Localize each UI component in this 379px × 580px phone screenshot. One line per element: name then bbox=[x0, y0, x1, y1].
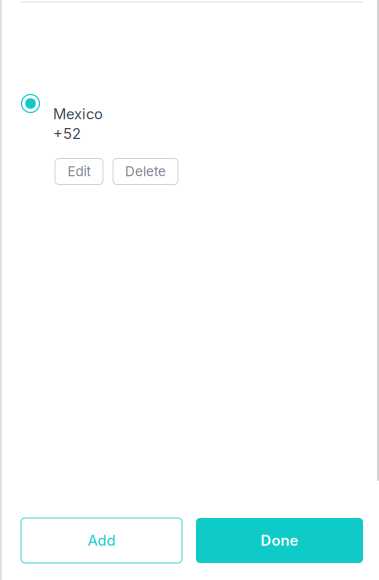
staticText: Delete bbox=[125, 163, 166, 179]
button[interactable]: Done bbox=[196, 518, 363, 563]
staticText: Add bbox=[87, 532, 115, 549]
button[interactable]: Edit bbox=[55, 158, 103, 184]
button[interactable]: Delete bbox=[113, 158, 178, 184]
button[interactable]: Add bbox=[21, 518, 182, 563]
button[interactable]: Mexico bbox=[21, 93, 103, 142]
staticText: Done bbox=[260, 532, 298, 549]
staticText: Mexico bbox=[53, 105, 103, 123]
staticText: Edit bbox=[67, 163, 90, 179]
staticText: +52 bbox=[53, 125, 81, 142]
